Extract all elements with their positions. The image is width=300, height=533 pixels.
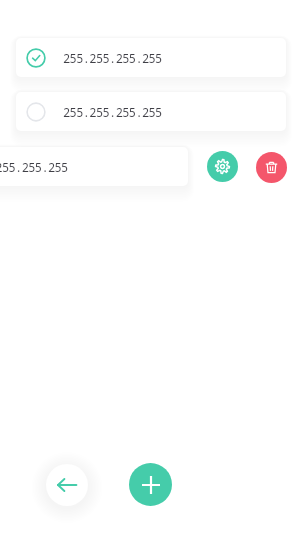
button[interactable]: Add [129,463,172,506]
button[interactable]: Back [46,464,88,506]
button[interactable]: 255.255.255.255 [0,147,188,186]
staticText: 255.255.255.255 [0,159,68,175]
staticText: 255.255.255.255 [63,104,162,120]
button[interactable]: 255.255.255.255 [16,92,286,131]
button[interactable]: 255.255.255.255 [16,38,286,77]
button[interactable]: Settings [207,151,238,182]
staticText: 255.255.255.255 [63,50,162,66]
button[interactable]: Delete [256,152,287,183]
